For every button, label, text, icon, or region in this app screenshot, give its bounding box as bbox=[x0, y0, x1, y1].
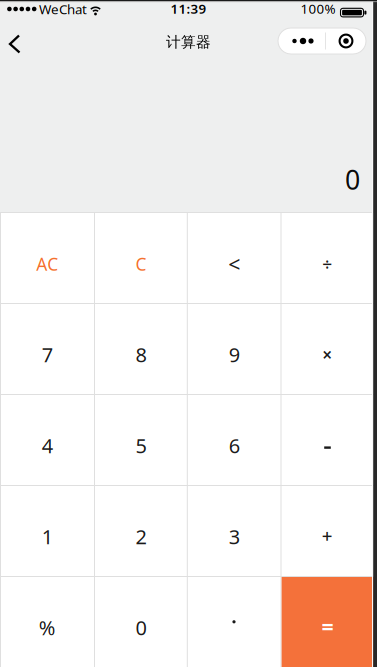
staticText: 0 bbox=[345, 162, 360, 197]
staticText: 5 bbox=[135, 432, 146, 459]
button[interactable]: AC bbox=[0, 212, 94, 303]
button[interactable]: 2 bbox=[94, 485, 187, 576]
staticText: 6 bbox=[229, 432, 240, 459]
staticText: 8 bbox=[135, 341, 146, 368]
button[interactable]: 7 bbox=[0, 303, 94, 394]
staticText: = bbox=[322, 612, 334, 640]
staticText: WeChat bbox=[39, 0, 87, 18]
button[interactable]: Multiply bbox=[281, 303, 373, 394]
button[interactable]: Minus bbox=[281, 394, 373, 485]
staticText: 3 bbox=[229, 523, 240, 550]
staticText: 1 bbox=[42, 523, 53, 550]
staticText: 计算器 bbox=[166, 33, 211, 51]
staticText: C bbox=[135, 252, 146, 275]
staticText: 7 bbox=[42, 341, 53, 368]
button[interactable]: Plus bbox=[281, 485, 373, 576]
staticText: AC bbox=[36, 252, 58, 275]
staticText: 2 bbox=[135, 523, 146, 550]
button[interactable]: 4 bbox=[0, 394, 94, 485]
button[interactable]: 0 bbox=[94, 576, 187, 667]
button[interactable]: Decimal point bbox=[187, 576, 281, 667]
staticText: 4 bbox=[42, 432, 53, 459]
button[interactable]: More bbox=[278, 28, 325, 54]
button[interactable]: 3 bbox=[187, 485, 281, 576]
staticText: 0 bbox=[135, 614, 146, 641]
staticText: 11:39 bbox=[170, 0, 206, 17]
button[interactable]: 8 bbox=[94, 303, 187, 394]
button[interactable]: Back bbox=[1, 29, 29, 59]
button[interactable]: Close bbox=[325, 28, 366, 54]
button[interactable]: Delete bbox=[187, 212, 281, 303]
button[interactable]: 1 bbox=[0, 485, 94, 576]
staticText: % bbox=[39, 614, 56, 641]
button[interactable]: Percent bbox=[0, 576, 94, 667]
button[interactable]: 6 bbox=[187, 394, 281, 485]
staticText: < bbox=[228, 250, 240, 278]
staticText: + bbox=[322, 523, 333, 548]
button[interactable]: 5 bbox=[94, 394, 187, 485]
button[interactable]: Equals bbox=[282, 577, 377, 667]
staticText: 9 bbox=[229, 341, 240, 368]
staticText: × bbox=[322, 343, 332, 366]
button[interactable]: 9 bbox=[187, 303, 281, 394]
button[interactable]: Divide bbox=[281, 212, 373, 303]
button[interactable]: C bbox=[94, 212, 187, 303]
staticText: 100% bbox=[300, 0, 335, 17]
staticText: ÷ bbox=[322, 252, 332, 275]
